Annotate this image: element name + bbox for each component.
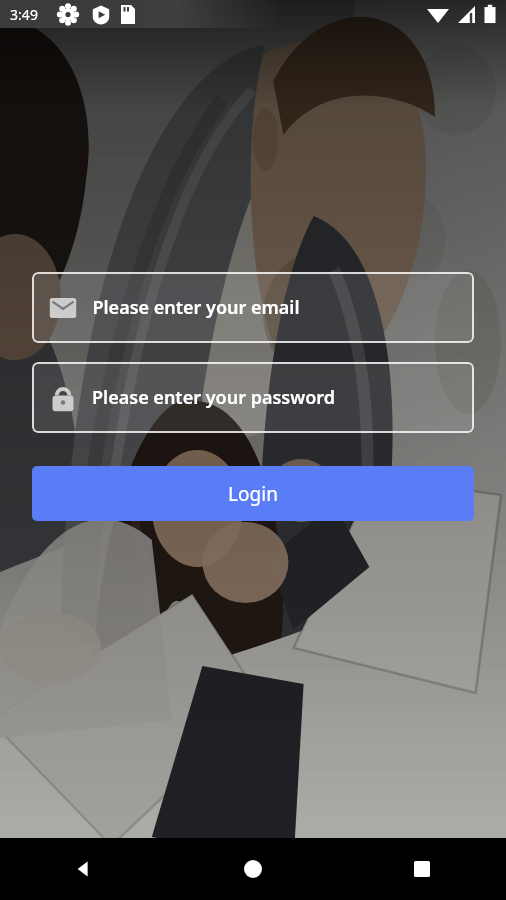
staticText: Please enter your password — [92, 385, 335, 410]
staticText: Login — [228, 481, 278, 507]
button[interactable]: Back — [0, 838, 168, 900]
button[interactable]: Recent apps — [337, 838, 506, 900]
staticText: Please enter your email — [92, 295, 300, 320]
button[interactable]: Please enter your email — [32, 272, 474, 343]
button[interactable]: Please enter your password — [32, 362, 474, 433]
button[interactable]: Home — [168, 838, 337, 900]
staticText: 3:49 — [10, 5, 38, 24]
button[interactable]: Login — [32, 466, 474, 521]
